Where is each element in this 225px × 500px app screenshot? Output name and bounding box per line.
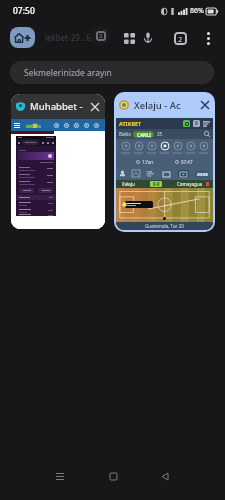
staticText: ZONE [197,172,208,177]
staticText: lekbet-29...6.p [45,32,98,43]
button[interactable]: New tab [10,27,35,48]
staticText: 07:50 [13,5,35,17]
staticText: 67:47 [181,159,193,165]
staticText: 0-0 [153,181,160,187]
staticText: Xelaju - Ac [134,99,197,112]
button[interactable]: Apps [116,25,142,51]
staticText: 86% [190,6,204,16]
staticText: 25 [157,131,163,137]
staticText: 1.Yarı [142,159,154,165]
staticText: 2 [99,32,103,40]
staticText: ATIKBET [119,120,142,127]
button[interactable]: More options [195,25,221,51]
staticText: Xelaju [122,181,135,187]
button[interactable]: Home [99,462,127,490]
staticText: 2 [178,34,183,44]
button[interactable]: Muhabbet - [11,94,105,229]
button[interactable]: Xelaju - Ac [114,92,215,232]
button[interactable]: Close tab [87,99,103,115]
button[interactable]: Voice search [135,25,161,51]
button[interactable]: Sekmelerinizde arayın [10,61,214,84]
button[interactable]: Tab switcher [167,25,193,51]
button[interactable]: Back [151,462,179,490]
staticText: Sekmelerinizde arayın [24,67,112,79]
staticText: Bahis [119,131,131,137]
staticText: Muhabbet - [30,100,87,113]
button[interactable]: Recent apps [46,462,74,490]
staticText: 8 [195,120,198,127]
staticText: CANLI [137,132,151,138]
staticText: Comayagua [177,181,203,187]
button[interactable]: Close tab [197,97,213,113]
staticText: Guatemala, Tur 20 [145,223,184,229]
